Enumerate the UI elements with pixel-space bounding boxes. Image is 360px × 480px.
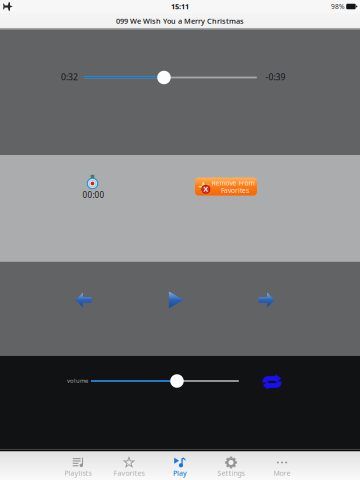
staticText: More (273, 468, 290, 478)
button[interactable]: Play (154, 452, 205, 480)
button[interactable]: Favorites (103, 452, 154, 480)
staticText: Favorites (113, 468, 144, 478)
button[interactable]: Play (168, 291, 183, 308)
staticText: 0:32 (61, 71, 78, 83)
staticText: 98% (331, 2, 345, 11)
button[interactable]: Settings (205, 452, 256, 480)
button[interactable]: Repeat (262, 375, 282, 389)
button[interactable]: Remove From (195, 177, 257, 195)
staticText: -0:39 (265, 71, 285, 83)
staticText: volume (67, 376, 88, 384)
staticText: 00:00 (82, 190, 104, 200)
staticText: 15:11 (171, 1, 189, 11)
staticText: Remove From (211, 178, 254, 188)
button[interactable]: Playlists (52, 452, 103, 480)
staticText: Favorites (221, 186, 249, 195)
staticText: Settings (217, 468, 244, 478)
staticText: 099 We Wish You a Merry Christmas (116, 16, 244, 26)
staticText: Play (173, 468, 187, 478)
button[interactable]: Previous (75, 292, 91, 307)
staticText: Playlists (64, 468, 91, 478)
button[interactable]: Next (258, 292, 274, 307)
button[interactable]: More (256, 452, 307, 480)
